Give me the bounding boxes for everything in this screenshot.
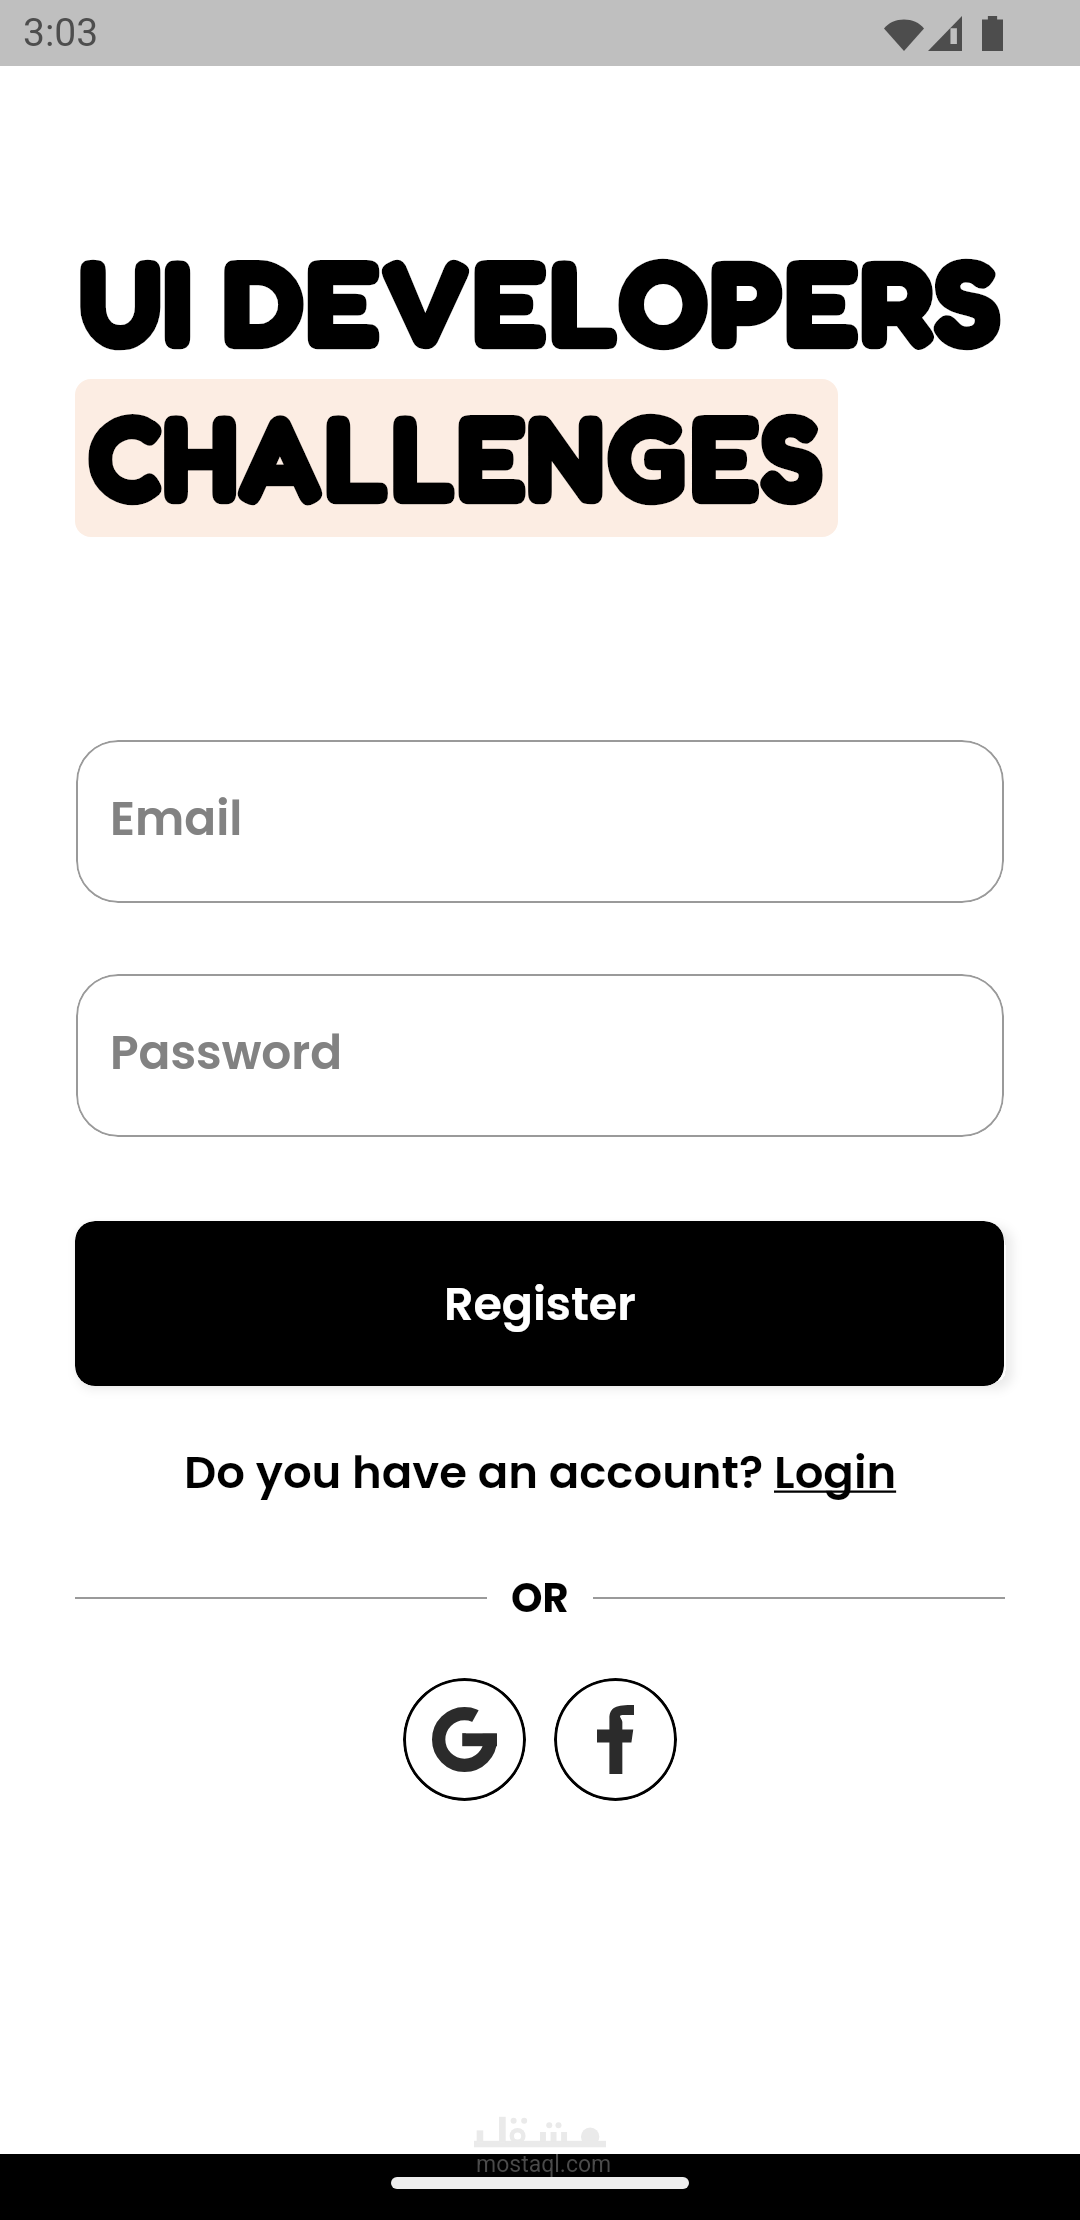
staticText: Do you have an account? — [184, 1441, 774, 1504]
button[interactable]: Register — [75, 1221, 1004, 1386]
staticText: Login — [774, 1441, 897, 1504]
button[interactable]: Sign in with Facebook — [554, 1678, 677, 1801]
button[interactable]: Login — [774, 1441, 897, 1504]
staticText: CHALLENGES — [88, 381, 824, 531]
button[interactable]: Password — [76, 974, 1004, 1137]
staticText: CHALLENGES — [88, 381, 824, 531]
staticText: Password — [110, 1020, 343, 1086]
staticText: 3:03 — [23, 10, 99, 56]
staticText: UI DEVELOPERS — [78, 226, 1001, 376]
staticText: OR — [511, 1570, 569, 1626]
button[interactable]: Email — [76, 740, 1004, 903]
staticText: Email — [110, 786, 243, 852]
button[interactable]: Sign in with Google — [403, 1678, 526, 1801]
staticText: Register — [444, 1272, 636, 1336]
staticText: UI DEVELOPERS — [78, 226, 1001, 376]
staticText: mostaql.com — [476, 2151, 612, 2178]
